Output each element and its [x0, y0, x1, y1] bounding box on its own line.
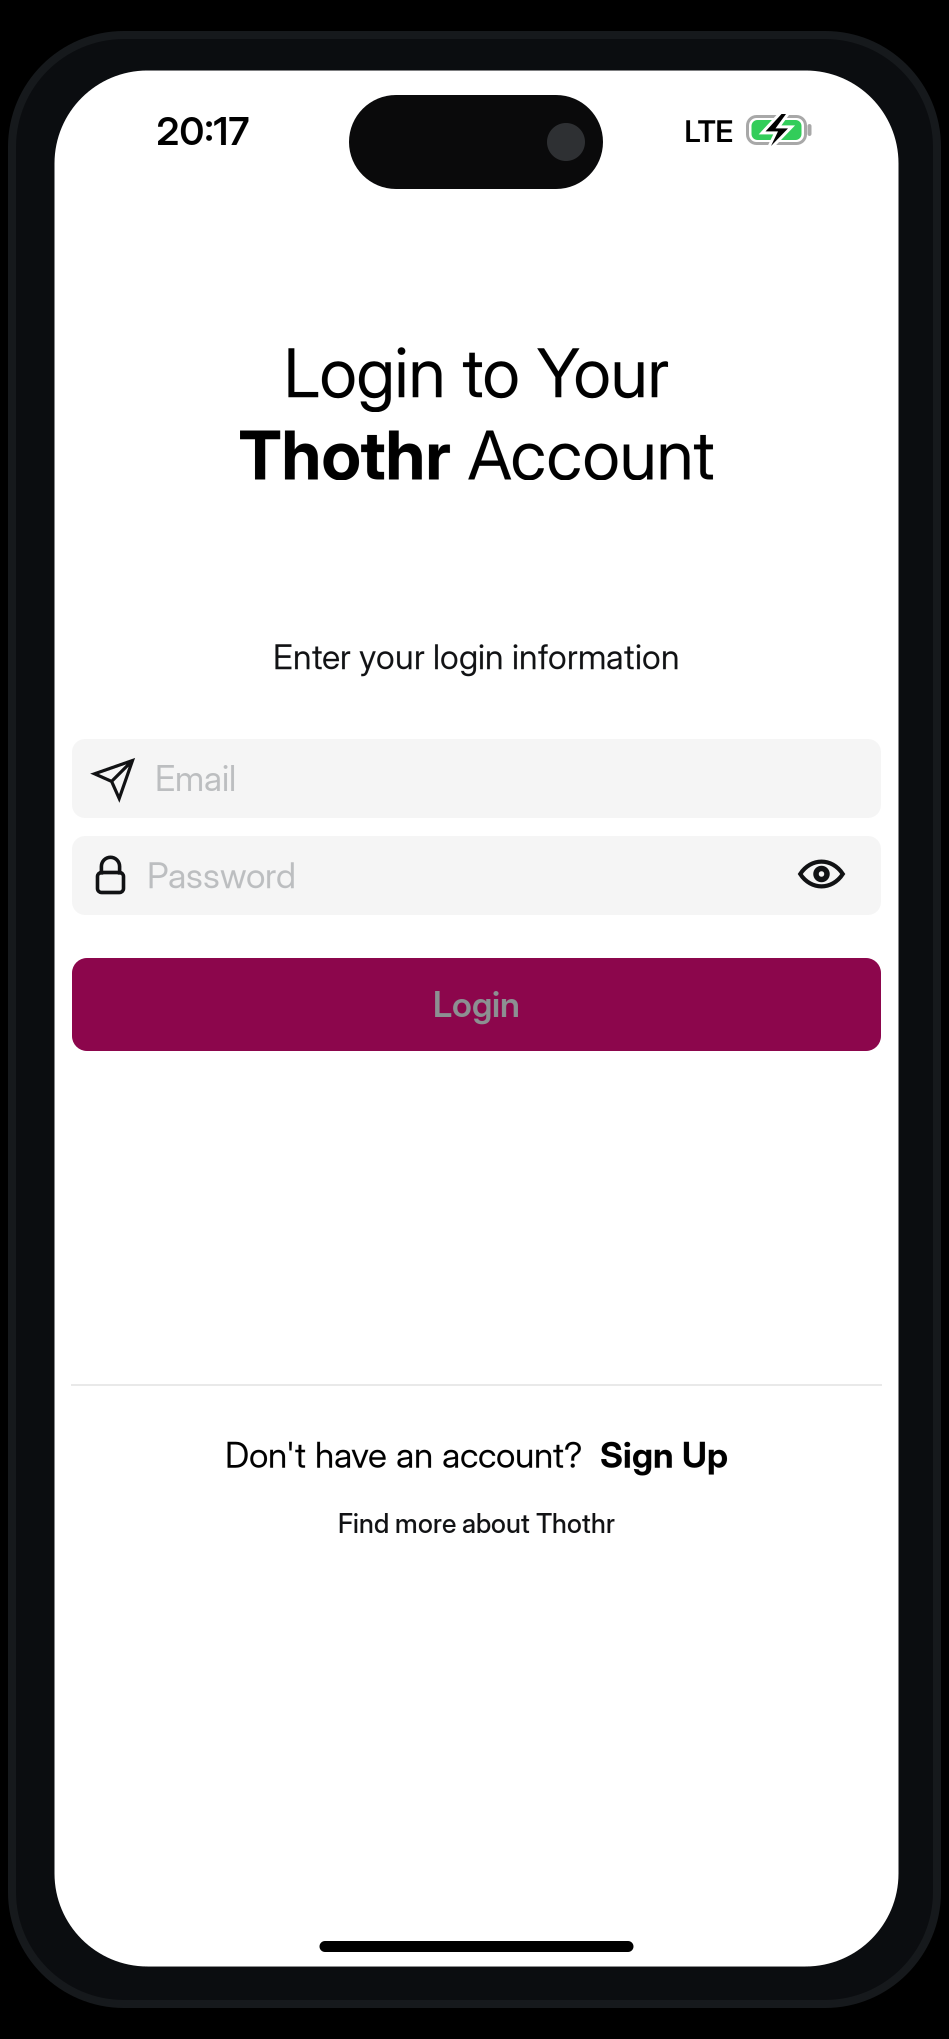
- staticText: Email: [155, 757, 236, 799]
- button[interactable]: Email: [72, 739, 881, 818]
- staticText: Login to Your: [283, 331, 669, 414]
- button[interactable]: Don't have an account? Sign Up: [225, 1434, 728, 1476]
- staticText: Login: [433, 983, 520, 1025]
- button[interactable]: Show password: [779, 841, 863, 907]
- staticText: LTE: [684, 114, 733, 149]
- staticText: Find more about Thothr: [338, 1507, 615, 1539]
- button[interactable]: Password: [72, 836, 881, 915]
- staticText: Enter your login information: [273, 636, 680, 677]
- button[interactable]: Find more about Thothr: [338, 1507, 615, 1539]
- button[interactable]: Login: [72, 958, 881, 1051]
- staticText: Thothr Account: [238, 414, 714, 495]
- staticText: 20:17: [156, 108, 249, 154]
- staticText: Password: [147, 854, 296, 897]
- staticText: Don't have an account? Sign Up: [225, 1434, 728, 1476]
